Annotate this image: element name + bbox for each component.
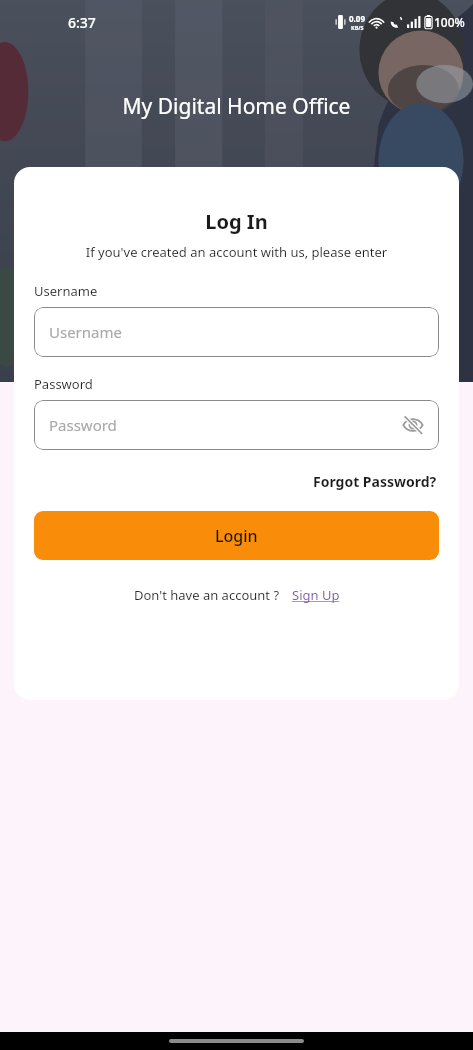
staticText: 0.09 — [349, 13, 365, 24]
button[interactable]: Sign Up — [292, 586, 340, 604]
staticText: Password — [49, 415, 117, 435]
staticText: If you've created an account with us, pl… — [14, 243, 459, 261]
staticText: Username — [49, 322, 122, 342]
staticText: Sign Up — [292, 586, 340, 604]
button[interactable]: Show password — [399, 411, 427, 439]
staticText: KB/S — [351, 24, 364, 31]
button[interactable]: Username — [34, 307, 439, 357]
staticText: Username — [34, 282, 98, 300]
button[interactable]: Forgot Password? — [311, 470, 439, 493]
staticText: 6:37 — [68, 13, 96, 32]
staticText: Login — [215, 525, 258, 547]
staticText: 100% — [434, 14, 465, 30]
staticText: My Digital Home Office — [0, 92, 473, 121]
staticText: Log In — [14, 208, 459, 235]
staticText: Password — [34, 375, 93, 393]
staticText: Forgot Password? — [313, 472, 437, 491]
button[interactable]: Password — [34, 400, 439, 450]
staticText: Don't have an account ? — [134, 586, 280, 604]
button[interactable]: Login — [34, 511, 439, 560]
